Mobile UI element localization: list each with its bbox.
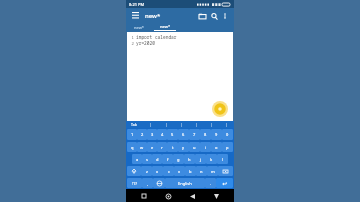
staticText: 4 <box>161 132 164 137</box>
button[interactable]: u <box>189 142 200 152</box>
button[interactable]: h <box>184 154 195 164</box>
button[interactable]: j <box>195 154 206 164</box>
button[interactable]: z <box>141 166 152 176</box>
button[interactable]: 3 <box>147 129 157 140</box>
button[interactable]: v <box>174 166 185 176</box>
button[interactable]: Open folder <box>196 10 208 22</box>
button[interactable]: enter <box>216 178 233 188</box>
staticText: new* <box>145 12 161 20</box>
button[interactable]: t <box>167 142 178 152</box>
button[interactable] <box>189 121 204 128</box>
button[interactable]: new* <box>126 23 152 32</box>
button[interactable]: Recents <box>138 190 150 202</box>
button[interactable]: y <box>178 142 189 152</box>
staticText: . <box>210 181 212 186</box>
staticText: 2 <box>141 132 144 137</box>
staticText: l <box>222 157 224 162</box>
button[interactable]: 7 <box>189 129 200 140</box>
button[interactable]: More options <box>220 11 230 21</box>
button[interactable]: Add <box>212 101 228 117</box>
staticText: 8:21 PM <box>129 2 145 7</box>
staticText: v <box>178 169 181 174</box>
button[interactable] <box>219 121 234 128</box>
staticText: s <box>146 157 148 162</box>
button[interactable]: !1? <box>127 178 142 188</box>
staticText: !1? <box>132 181 138 186</box>
staticText: g <box>177 157 180 162</box>
button[interactable]: s <box>142 154 152 164</box>
staticText: 2 <box>129 41 134 46</box>
staticText: 9 <box>215 132 218 137</box>
button[interactable]: c <box>163 166 174 176</box>
button[interactable]: del <box>218 166 233 176</box>
staticText: i <box>205 145 207 150</box>
button[interactable]: Tab <box>126 121 142 128</box>
staticText: f <box>167 157 169 162</box>
button[interactable]: globe <box>153 178 165 188</box>
button[interactable]: . <box>205 178 216 188</box>
button[interactable] <box>142 121 158 128</box>
button[interactable]: m <box>207 166 218 176</box>
staticText: r <box>161 145 163 150</box>
button[interactable]: Back <box>186 190 198 202</box>
button[interactable]: shift <box>127 166 141 176</box>
button[interactable]: r <box>157 142 167 152</box>
button[interactable]: q <box>127 142 137 152</box>
button[interactable]: p <box>222 142 233 152</box>
button[interactable]: 1 <box>127 129 137 140</box>
button[interactable]: i <box>200 142 211 152</box>
staticText: t <box>172 145 174 150</box>
staticText: n <box>200 169 203 174</box>
staticText: English <box>178 181 192 186</box>
button[interactable]: f <box>162 154 173 164</box>
button[interactable]: 5 <box>167 129 178 140</box>
button[interactable]: d <box>152 154 162 164</box>
button[interactable] <box>204 121 219 128</box>
staticText: q <box>131 145 134 150</box>
button[interactable]: Home <box>162 190 174 202</box>
staticText: p <box>226 145 229 150</box>
button[interactable]: 8 <box>200 129 211 140</box>
button[interactable]: 6 <box>178 129 189 140</box>
staticText: , <box>147 181 149 186</box>
button[interactable]: w <box>137 142 147 152</box>
button[interactable]: English <box>165 178 205 188</box>
staticText: yr=2020 <box>136 40 155 46</box>
button[interactable]: Menu <box>130 10 141 21</box>
button[interactable]: n <box>196 166 207 176</box>
staticText: new* <box>160 24 171 29</box>
staticText: 1 <box>129 35 134 40</box>
staticText: 1 <box>131 132 134 137</box>
staticText: j <box>200 157 202 162</box>
staticText: m <box>211 169 215 174</box>
staticText: d <box>156 157 159 162</box>
button[interactable]: x <box>152 166 163 176</box>
button[interactable]: 0 <box>222 129 233 140</box>
staticText: e <box>151 145 154 150</box>
button[interactable]: 2 <box>137 129 147 140</box>
staticText: 8 <box>204 132 207 137</box>
button[interactable]: , <box>142 178 153 188</box>
staticText: 7 <box>193 132 196 137</box>
button[interactable]: Hide keyboard <box>210 190 222 202</box>
staticText: 0 <box>226 132 229 137</box>
staticText: 3 <box>151 132 154 137</box>
button[interactable]: b <box>185 166 196 176</box>
staticText: Tab <box>131 122 137 127</box>
button[interactable] <box>158 121 174 128</box>
staticText: b <box>189 169 192 174</box>
button[interactable]: Search <box>208 10 220 22</box>
button[interactable]: 4 <box>157 129 167 140</box>
button[interactable]: g <box>173 154 184 164</box>
button[interactable]: l <box>217 154 228 164</box>
staticText: h <box>188 157 191 162</box>
button[interactable] <box>174 121 189 128</box>
button[interactable]: a <box>132 154 142 164</box>
button[interactable]: e <box>147 142 157 152</box>
button[interactable]: new* <box>152 23 178 32</box>
button[interactable]: k <box>206 154 217 164</box>
staticText: x <box>156 169 159 174</box>
staticText: 5 <box>171 132 174 137</box>
button[interactable]: o <box>211 142 222 152</box>
button[interactable]: 9 <box>211 129 222 140</box>
